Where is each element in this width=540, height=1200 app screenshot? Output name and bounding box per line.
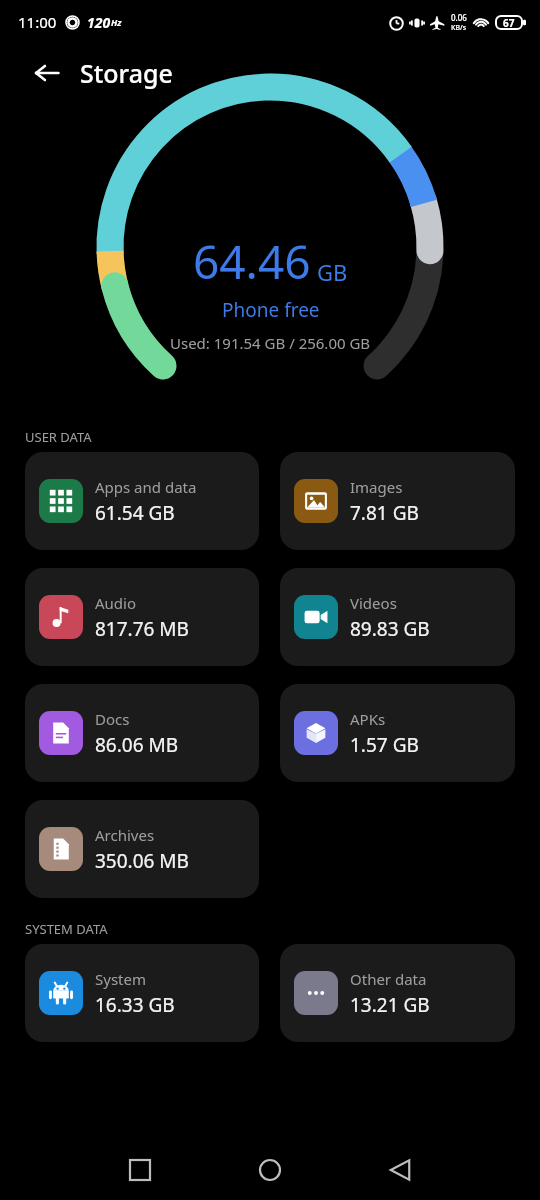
staticText: 11:00 [18, 12, 57, 32]
staticText: Archives [95, 825, 155, 845]
staticText: Phone free [222, 297, 320, 323]
button[interactable]: Videos [280, 568, 515, 666]
staticText: Docs [95, 709, 130, 729]
staticText: 61.54 GB [95, 500, 175, 526]
staticText: System [95, 969, 146, 989]
staticText: Images [350, 477, 403, 497]
staticText: 7.81 GB [350, 500, 419, 526]
button[interactable]: Audio [25, 568, 259, 666]
staticText: Other data [350, 969, 427, 989]
button[interactable]: Archives [25, 800, 259, 898]
button[interactable]: System [25, 944, 259, 1042]
staticText: 67 [503, 16, 515, 30]
staticText: 0.06 [451, 12, 467, 23]
staticText: KB/s [451, 23, 467, 33]
staticText: Hz [111, 16, 122, 28]
staticText: Videos [350, 593, 397, 613]
staticText: Used: 191.54 GB / 256.00 GB [170, 333, 371, 353]
staticText: 350.06 MB [95, 848, 189, 874]
staticText: 16.33 GB [95, 992, 175, 1018]
staticText: 64.46 [193, 230, 311, 293]
staticText: 120 [87, 13, 111, 32]
staticText: Audio [95, 593, 137, 613]
staticText: Storage [80, 56, 173, 90]
staticText: 89.83 GB [350, 616, 430, 642]
staticText: 13.21 GB [350, 992, 430, 1018]
staticText: APKs [350, 709, 386, 729]
staticText: Apps and data [95, 477, 197, 497]
button[interactable]: Home [245, 1145, 295, 1195]
staticText: 86.06 MB [95, 732, 179, 758]
staticText: SYSTEM DATA [25, 920, 108, 938]
staticText: USER DATA [25, 428, 92, 446]
button[interactable]: APKs [280, 684, 515, 782]
button[interactable]: Back [24, 50, 70, 96]
button[interactable]: Apps and data [25, 452, 259, 550]
button[interactable]: Docs [25, 684, 259, 782]
staticText: 1.57 GB [350, 732, 419, 758]
button[interactable]: Back [375, 1145, 425, 1195]
button[interactable]: Recents [115, 1145, 165, 1195]
button[interactable]: Other data [280, 944, 515, 1042]
staticText: 817.76 MB [95, 616, 189, 642]
button[interactable]: Images [280, 452, 515, 550]
staticText: GB [317, 257, 348, 287]
